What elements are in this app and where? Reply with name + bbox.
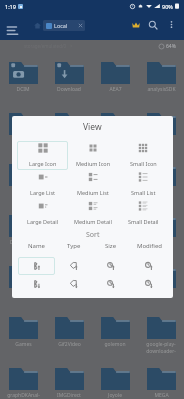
button[interactable]: Download [46, 60, 92, 93]
staticText: Games [15, 341, 32, 348]
staticText: Modified [137, 242, 162, 250]
staticText: graphDKAnal- [7, 392, 40, 399]
staticText: Gif2Video [58, 341, 81, 348]
button[interactable]: Ascending modified [130, 257, 168, 275]
button[interactable]: Large Icon [17, 141, 68, 170]
button[interactable]: Small List [118, 170, 168, 199]
staticText: MEGA [154, 392, 169, 399]
button[interactable]: freeline [138, 213, 184, 246]
staticText: Medium List [77, 189, 109, 196]
button[interactable]: Medium Detail [68, 199, 118, 228]
staticText: Sort [86, 230, 100, 240]
staticText: 1:19 [5, 3, 16, 10]
staticText: analysisSDK [147, 86, 176, 93]
staticText: DCIM [16, 86, 30, 93]
button[interactable]: Descending size [92, 275, 130, 293]
staticText: Type [67, 242, 81, 250]
staticText: Small List [131, 189, 156, 196]
button[interactable]: Ascending size [92, 257, 130, 275]
staticText: golemon [104, 341, 126, 348]
button[interactable]: Documents [0, 213, 46, 246]
staticText: dwhelper [58, 239, 81, 246]
staticText: AEA7 [109, 86, 122, 93]
button[interactable]: Small Detail [118, 199, 168, 228]
button[interactable]: Gif2Video [46, 315, 92, 348]
staticText: Large Icon [29, 160, 57, 167]
staticText: Small Icon [130, 160, 157, 167]
button[interactable]: Descending modified [130, 275, 168, 293]
staticText: google-play-downloader- [138, 341, 184, 354]
staticText: Documents [10, 239, 37, 246]
button[interactable]: Books [138, 111, 184, 144]
button[interactable]: Android [46, 111, 92, 144]
button[interactable]: DingTalk [138, 162, 184, 195]
button[interactable]: google-play-downloader- [138, 315, 184, 354]
button[interactable]: AEA7 [92, 60, 138, 93]
staticText: 64% [166, 43, 176, 50]
button[interactable]: Data [92, 162, 138, 195]
button[interactable]: dwhelper [46, 213, 92, 246]
staticText: freeline [152, 239, 170, 246]
button[interactable]: Qpoke [92, 264, 138, 297]
button[interactable]: More options [166, 19, 176, 29]
button[interactable]: Joyole [92, 366, 138, 399]
staticText: Cache [16, 188, 31, 195]
button[interactable]: Premium [130, 19, 141, 30]
button[interactable]: FilesApp [138, 264, 184, 297]
staticText: Local [54, 22, 68, 29]
button[interactable]: DCIM [0, 60, 46, 93]
button[interactable]: Large Detail [17, 199, 68, 228]
button[interactable]: backups [92, 111, 138, 144]
staticText: Medium Icon [76, 160, 111, 167]
staticText: Medium Detail [74, 218, 112, 225]
staticText: Name [28, 242, 45, 250]
button[interactable]: golemon [92, 315, 138, 348]
staticText: DingTalk [151, 188, 172, 195]
button[interactable]: IMGDirect [46, 366, 92, 399]
button[interactable]: Local [43, 20, 85, 31]
button[interactable]: analysisSDK [138, 60, 184, 93]
staticText: IMGDirect [57, 392, 81, 399]
button[interactable]: Alarms [0, 111, 46, 144]
button[interactable]: Descending name [18, 275, 55, 293]
button[interactable]: graphDKAnal- [0, 366, 46, 399]
button[interactable]: Large List [17, 170, 68, 199]
button[interactable]: MEGA [138, 366, 184, 399]
staticText: View [83, 121, 102, 133]
staticText: Download [57, 86, 81, 93]
button[interactable]: Small Icon [118, 141, 168, 170]
staticText: Alarms [15, 137, 32, 144]
staticText: Large Detail [27, 218, 59, 225]
staticText: Android [60, 137, 79, 144]
staticText: 90% [162, 3, 173, 10]
button[interactable]: LOGS-01-FILE [46, 264, 92, 297]
button[interactable]: Search [147, 19, 158, 30]
staticText: Small Detail [128, 218, 159, 225]
button[interactable]: Ascending name [18, 257, 55, 275]
button[interactable]: Cache [0, 162, 46, 195]
button[interactable]: Descending type [55, 275, 92, 293]
button[interactable]: Ascending type [55, 257, 92, 275]
button[interactable]: Medium Icon [68, 141, 118, 170]
staticText: Fonts [109, 239, 122, 246]
staticText: com.xx [61, 188, 78, 195]
staticText: Large List [30, 189, 56, 196]
staticText: Joyole [108, 392, 122, 399]
button[interactable]: Games [0, 315, 46, 348]
button[interactable]: com.xx [46, 162, 92, 195]
button[interactable]: Medium List [68, 170, 118, 199]
button[interactable]: Update [0, 264, 46, 297]
button[interactable]: Menu [5, 19, 18, 32]
staticText: Size [105, 242, 117, 250]
button[interactable]: Fonts [92, 213, 138, 246]
